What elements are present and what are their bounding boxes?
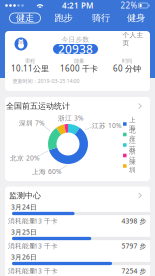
staticText: 3月26日 bbox=[11, 253, 37, 261]
staticText: 能量 bbox=[74, 58, 84, 64]
staticText: 60 分钟 bbox=[113, 63, 141, 74]
button[interactable]: 健走 bbox=[9, 12, 40, 23]
staticText: 22% bbox=[120, 0, 137, 11]
staticText: 健走 bbox=[16, 12, 34, 24]
staticText: 北京 bbox=[129, 126, 136, 143]
button[interactable]: 监测中心 bbox=[5, 189, 150, 201]
staticText: 上海 60% bbox=[32, 167, 62, 176]
staticText: 3月24日 bbox=[11, 203, 37, 211]
button[interactable]: 个人主页 bbox=[120, 34, 146, 43]
staticText: 4:21 PM bbox=[62, 0, 93, 11]
staticText: 113 千卡 bbox=[30, 217, 58, 225]
staticText: 跑步 bbox=[54, 12, 72, 24]
staticText: 113 千卡 bbox=[30, 242, 58, 250]
staticText: 消耗能量 bbox=[8, 217, 36, 225]
staticText: 上海 bbox=[129, 116, 136, 132]
staticText: 今日步数 bbox=[61, 35, 89, 44]
staticText: 10.11公里 bbox=[11, 63, 49, 74]
staticText: 个人主页 bbox=[122, 31, 143, 47]
button[interactable]: 骑行 bbox=[85, 12, 116, 23]
staticText: 深圳 bbox=[129, 158, 136, 174]
staticText: 北京 20% bbox=[10, 154, 40, 162]
staticText: 20938 bbox=[58, 41, 93, 57]
staticText: 江苏 bbox=[129, 137, 136, 153]
staticText: 江苏 10% bbox=[92, 121, 122, 130]
staticText: 健身 bbox=[127, 12, 145, 24]
button[interactable]: 跑步 bbox=[48, 12, 79, 23]
staticText: 骑行 bbox=[92, 12, 110, 24]
button[interactable]: 全国前五运动统计 bbox=[5, 100, 150, 112]
staticText: 消耗能量 bbox=[8, 242, 36, 250]
staticText: 全国前五运动统计 bbox=[6, 101, 70, 111]
staticText: 时间 bbox=[122, 58, 132, 64]
button[interactable]: 健身 bbox=[120, 12, 151, 23]
staticText: 113 千卡 bbox=[30, 267, 58, 275]
staticText: 5797 步 bbox=[121, 242, 146, 250]
staticText: 消耗能量 bbox=[8, 267, 36, 275]
staticText: 浙江 bbox=[129, 147, 136, 164]
staticText: 1600 千卡 bbox=[60, 63, 98, 74]
staticText: 里程 bbox=[25, 58, 35, 64]
staticText: 3月25日 bbox=[11, 228, 37, 236]
staticText: 4398 步 bbox=[121, 217, 146, 225]
staticText: 监测中心 bbox=[9, 191, 41, 200]
staticText: 浙江 3% bbox=[58, 114, 84, 122]
staticText: 更新时间：2019-03-25 14:00 bbox=[12, 77, 79, 85]
staticText: 深圳 7% bbox=[19, 119, 45, 127]
staticText: 7254 步 bbox=[121, 267, 146, 275]
